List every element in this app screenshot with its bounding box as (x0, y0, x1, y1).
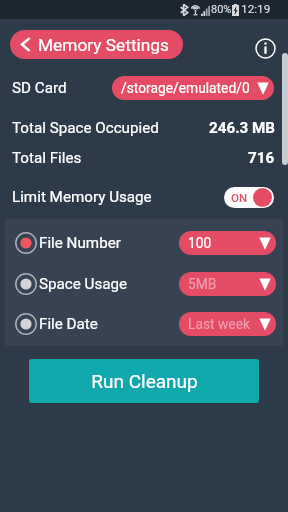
button[interactable]: /storage/emulated/0 (112, 76, 274, 100)
button[interactable]: ON (224, 187, 274, 208)
staticText: /storage/emulated/0 (121, 80, 250, 96)
staticText: SD Card (12, 79, 67, 97)
button[interactable]: Memory Settings (10, 30, 183, 59)
staticText: 12:19 (241, 2, 271, 16)
staticText: Limit Memory Usage (12, 188, 152, 206)
staticText: 246.3 MB (209, 119, 276, 137)
staticText: 5MB (188, 276, 217, 292)
staticText: File Date (39, 315, 98, 333)
staticText: 80% (211, 3, 232, 16)
button[interactable]: Space Usage (5, 265, 283, 303)
staticText: 716 (248, 149, 275, 167)
staticText: Last week (188, 316, 250, 332)
staticText: File Number (39, 234, 121, 252)
staticText: Total Files (12, 149, 82, 167)
button[interactable]: File Date (5, 305, 283, 343)
staticText: Memory Settings (38, 35, 169, 55)
button[interactable]: Last week (179, 312, 276, 336)
staticText: 100 (188, 235, 212, 251)
staticText: Run Cleanup (91, 370, 198, 392)
staticText: Total Space Occupied (12, 119, 159, 137)
button[interactable]: Run Cleanup (29, 359, 259, 403)
button[interactable]: 5MB (179, 272, 276, 296)
staticText: Space Usage (39, 275, 128, 293)
staticText: ON (231, 191, 248, 204)
button[interactable]: 100 (179, 231, 276, 255)
button[interactable]: Info (252, 35, 278, 61)
button[interactable]: File Number (5, 224, 283, 262)
